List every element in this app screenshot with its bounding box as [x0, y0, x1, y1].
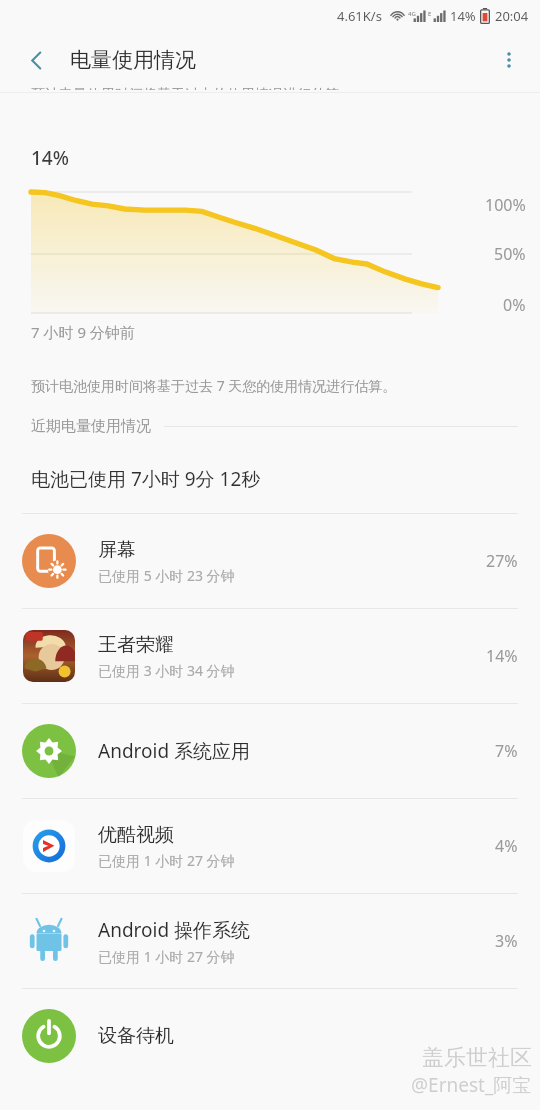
staticText: 预计电量使用时间将基于过去的使用情况进行估算 — [31, 86, 339, 90]
staticText: 已使用 3 小时 34 分钟 — [98, 661, 235, 680]
staticText: 27% — [486, 550, 518, 572]
staticText: 20:04 — [495, 7, 529, 25]
staticText: 优酷视频 — [98, 823, 174, 847]
staticText: 3% — [495, 930, 518, 952]
staticText: 14% — [31, 145, 69, 171]
button[interactable]: Back — [14, 38, 58, 82]
button[interactable]: 王者荣耀 — [0, 609, 540, 703]
button[interactable]: 设备待机 — [0, 989, 540, 1083]
staticText: Android 操作系统 — [98, 917, 251, 943]
staticText: 14% — [450, 7, 476, 25]
staticText: 14% — [486, 645, 518, 667]
staticText: 盖乐世社区 — [422, 1044, 532, 1072]
staticText: 已使用 1 小时 27 分钟 — [98, 851, 235, 870]
staticText: 50% — [494, 243, 526, 265]
staticText: 0% — [503, 294, 526, 316]
staticText: 王者荣耀 — [98, 633, 174, 657]
staticText: 近期电量使用情况 — [31, 417, 151, 436]
staticText: 电池已使用 7小时 9分 12秒 — [31, 466, 261, 492]
staticText: 电量使用情况 — [70, 47, 196, 73]
staticText: 4G — [408, 10, 416, 18]
staticText: 已使用 1 小时 27 分钟 — [98, 947, 235, 966]
button[interactable]: More options — [486, 37, 532, 83]
staticText: 7 小时 9 分钟前 — [31, 322, 135, 342]
staticText: 屏幕 — [98, 538, 136, 562]
staticText: 4.61K/s — [337, 7, 382, 25]
staticText: 已使用 5 小时 23 分钟 — [98, 566, 235, 585]
button[interactable]: 屏幕 — [0, 514, 540, 608]
button[interactable]: Android 系统应用 — [0, 704, 540, 798]
staticText: 100% — [485, 194, 526, 216]
staticText: 7% — [495, 740, 518, 762]
staticText: Android 系统应用 — [98, 738, 251, 764]
staticText: 设备待机 — [98, 1024, 174, 1048]
button[interactable]: 优酷视频 — [0, 799, 540, 893]
staticText: 4% — [495, 835, 518, 857]
staticText: 预计电池使用时间将基于过去 7 天您的使用情况进行估算。 — [31, 376, 397, 395]
button[interactable]: Android 操作系统 — [0, 894, 540, 988]
staticText: @Ernest_阿宝 — [411, 1072, 532, 1098]
staticText: E — [428, 10, 432, 18]
